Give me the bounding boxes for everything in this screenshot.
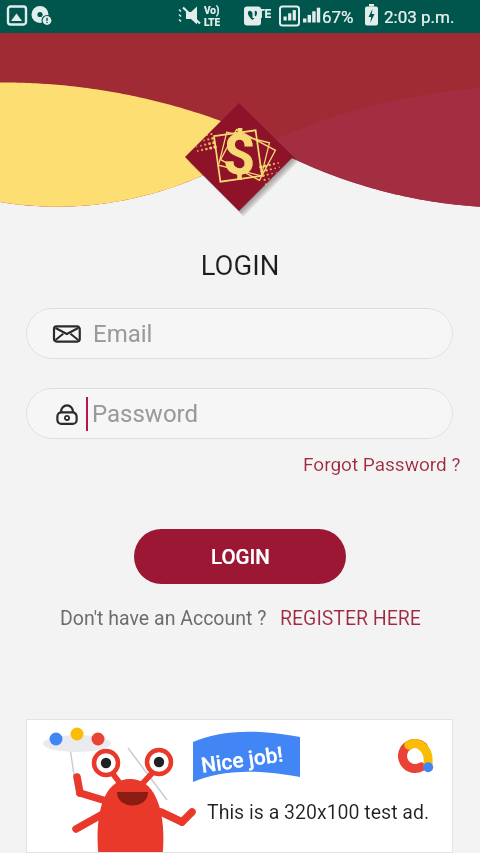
- staticText: LOGIN: [211, 545, 270, 569]
- staticText: Password: [92, 400, 199, 428]
- staticText: Don't have an Account ?: [60, 607, 267, 630]
- staticText: $: [223, 122, 256, 188]
- staticText: 67%: [322, 7, 354, 27]
- staticText: Vo): [204, 5, 220, 17]
- button[interactable]: Password: [26, 388, 453, 439]
- staticText: Email: [93, 320, 153, 348]
- staticText: This is a 320x100 test ad.: [207, 801, 430, 824]
- staticText: Nice job!: [200, 742, 285, 779]
- staticText: LOGIN: [0, 249, 480, 281]
- staticText: 2:03 p.m.: [384, 7, 455, 27]
- button[interactable]: Email: [26, 308, 453, 359]
- button[interactable]: REGISTER HERE: [280, 607, 421, 630]
- button[interactable]: Nice job!: [26, 719, 453, 853]
- button[interactable]: Forgot Password ?: [284, 448, 480, 480]
- staticText: LTE: [204, 17, 221, 29]
- staticText: LTE: [252, 7, 272, 21]
- button[interactable]: LOGIN: [134, 529, 346, 584]
